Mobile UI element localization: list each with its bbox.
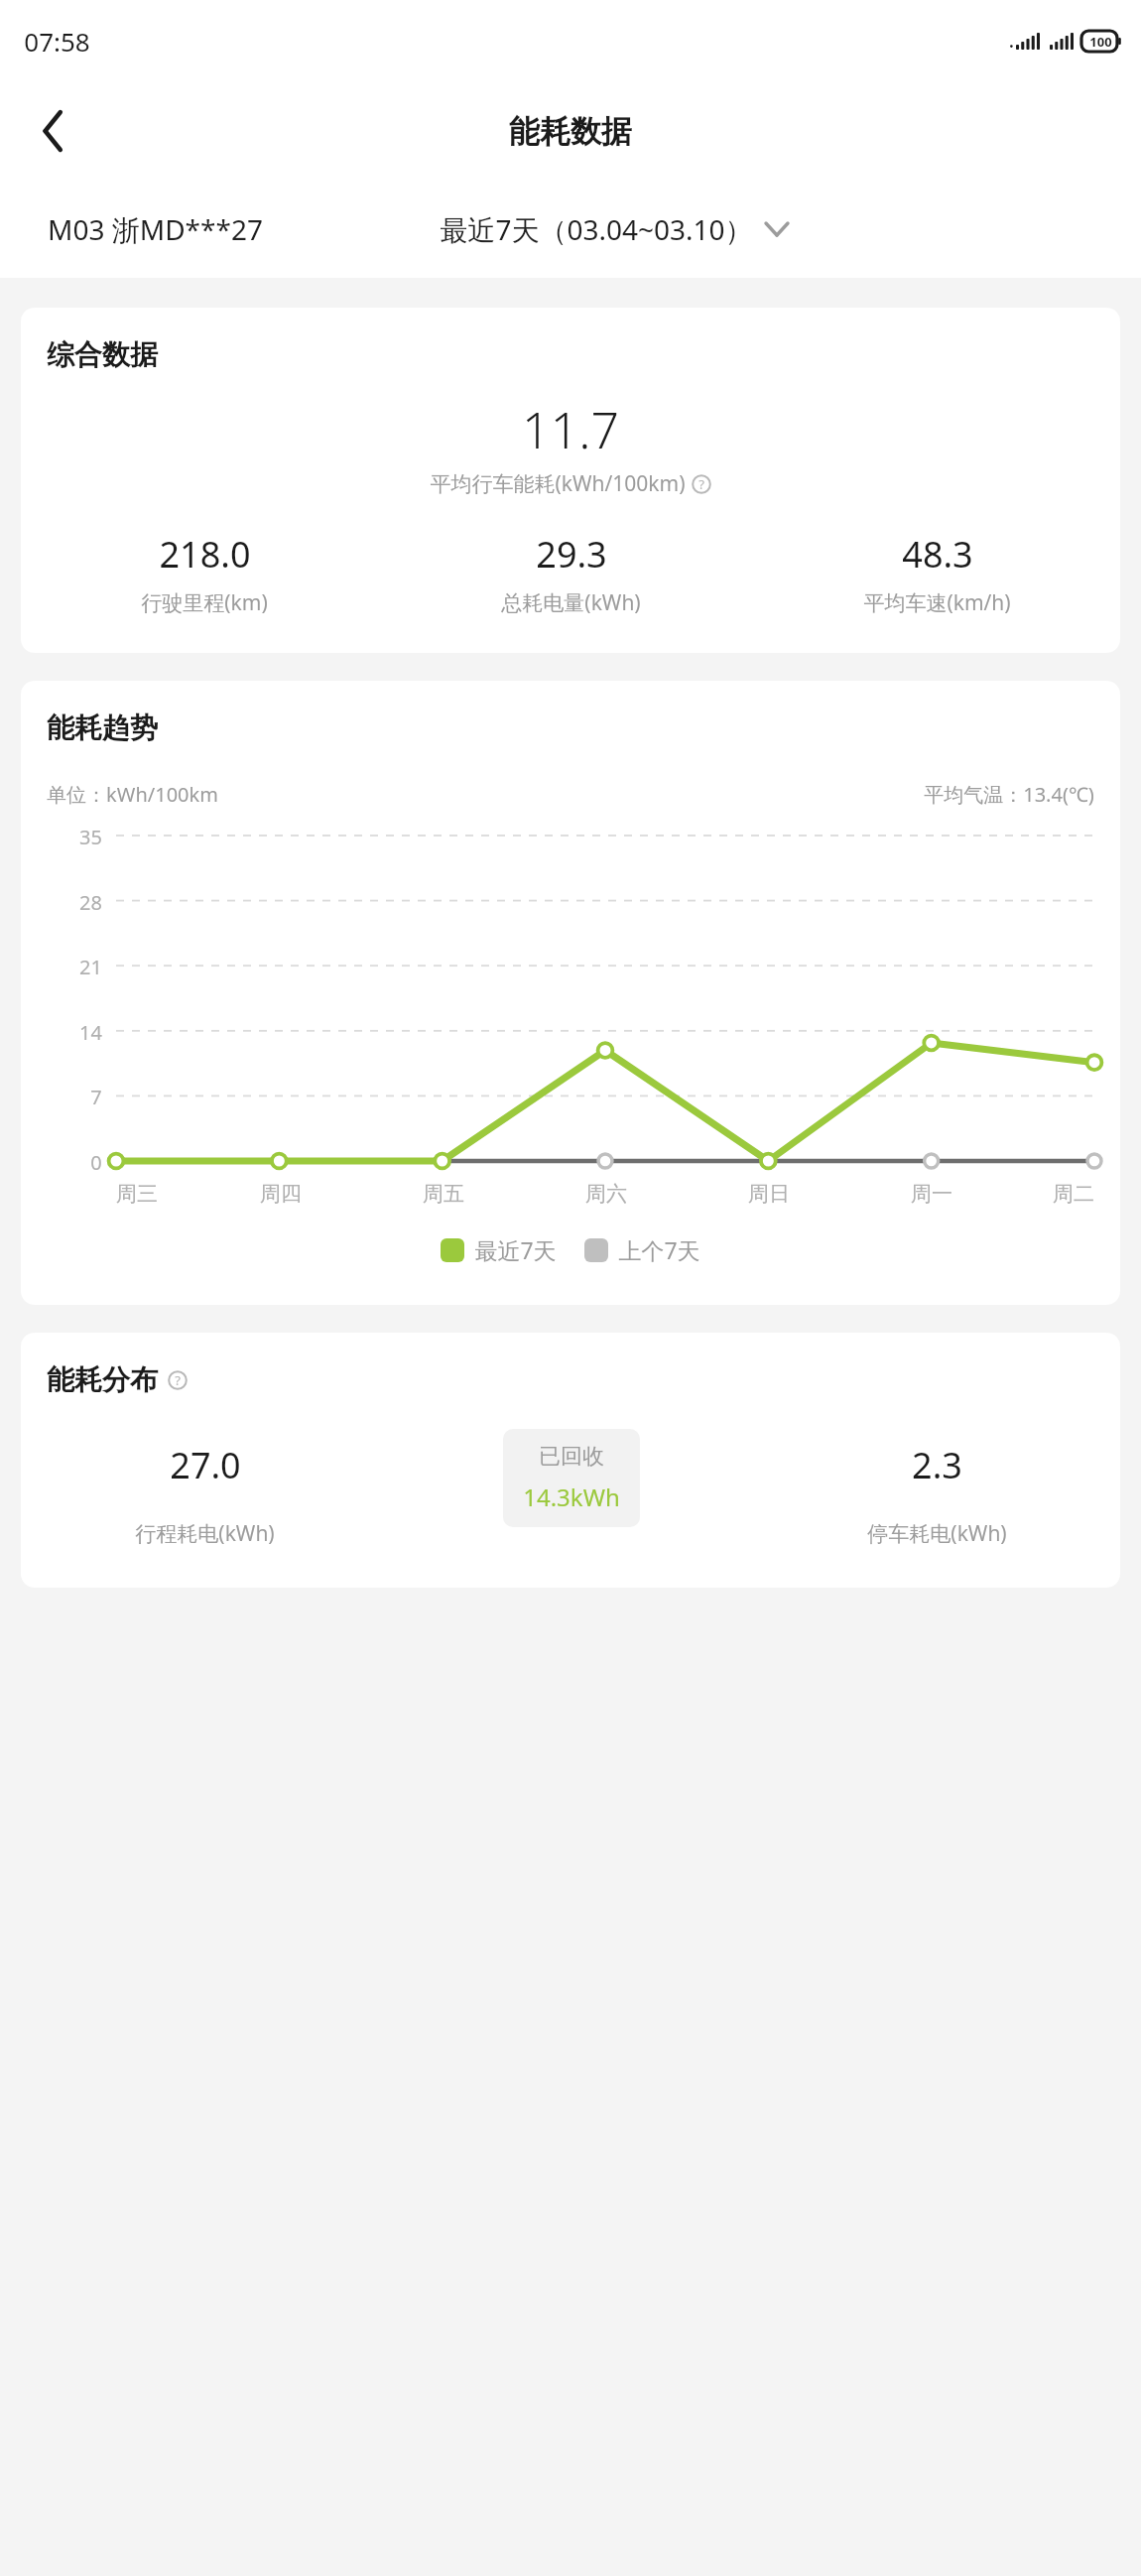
staticText: 29.3 xyxy=(536,530,607,579)
staticText: 最近7天 xyxy=(474,1234,557,1265)
staticText: 7 xyxy=(90,1084,102,1107)
button[interactable]: Back xyxy=(22,100,83,162)
staticText: 综合数据 xyxy=(47,337,158,372)
staticText: 周六 xyxy=(585,1181,627,1207)
staticText: 14.3kWh xyxy=(523,1481,620,1513)
staticText: 周日 xyxy=(748,1181,790,1207)
staticText: 平均车速(km/h) xyxy=(863,588,1011,617)
staticText: 最近7天（03.04~03.10） xyxy=(440,210,753,248)
staticText: 28 xyxy=(79,889,102,913)
staticText: 行程耗电(kWh) xyxy=(135,1519,275,1548)
staticText: 0 xyxy=(90,1149,102,1173)
staticText: 平均气温：13.4(℃) xyxy=(924,781,1094,808)
staticText: 能耗分布 xyxy=(47,1362,158,1397)
button[interactable]: 最近7天 xyxy=(441,1234,557,1265)
staticText: 周五 xyxy=(423,1181,464,1207)
button[interactable]: 最近7天（03.04~03.10） xyxy=(440,210,789,248)
staticText: M03 浙MD***27 xyxy=(48,210,263,248)
staticText: 平均行车能耗(kWh/100km) xyxy=(430,469,686,498)
staticText: 单位：kWh/100km xyxy=(47,781,218,808)
staticText: 48.3 xyxy=(902,530,973,579)
staticText: 218.0 xyxy=(159,530,251,579)
staticText: 27.0 xyxy=(170,1441,241,1489)
staticText: 14 xyxy=(79,1019,102,1043)
staticText: ? xyxy=(175,1371,181,1389)
staticText: 能耗趋势 xyxy=(47,710,158,745)
staticText: 行驶里程(km) xyxy=(141,588,268,617)
staticText: 停车耗电(kWh) xyxy=(867,1519,1007,1548)
staticText: 35 xyxy=(79,824,102,847)
button[interactable]: More info xyxy=(692,474,711,494)
staticText: 已回收 xyxy=(539,1443,604,1471)
staticText: 总耗电量(kWh) xyxy=(501,588,641,617)
staticText: 07:58 xyxy=(24,24,90,59)
staticText: 2.3 xyxy=(912,1441,962,1489)
staticText: 周三 xyxy=(116,1181,158,1207)
staticText: ? xyxy=(698,475,704,493)
staticText: 能耗数据 xyxy=(509,112,632,151)
staticText: 周四 xyxy=(260,1181,302,1207)
button[interactable]: M03 浙MD***27 xyxy=(48,210,263,248)
staticText: 11.7 xyxy=(522,396,619,463)
staticText: 上个7天 xyxy=(618,1234,700,1265)
staticText: 21 xyxy=(79,954,102,977)
button[interactable]: 上个7天 xyxy=(584,1234,700,1265)
button[interactable]: More info xyxy=(168,1370,188,1390)
staticText: 周一 xyxy=(911,1181,952,1207)
staticText: 100 xyxy=(1089,33,1112,51)
staticText: 周二 xyxy=(1053,1181,1094,1207)
